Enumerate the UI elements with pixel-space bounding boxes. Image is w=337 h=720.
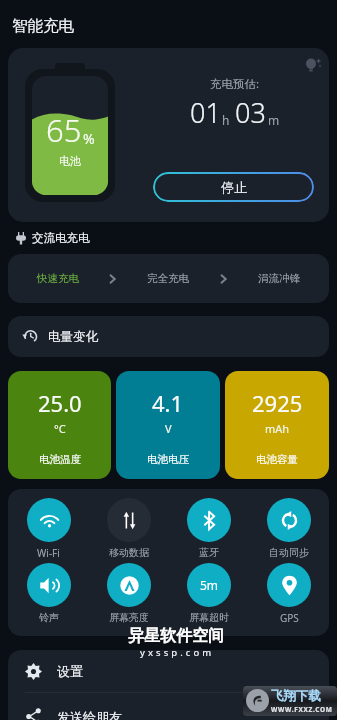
- staticText: 智能充电: [12, 16, 74, 36]
- staticText: 01: [190, 94, 221, 131]
- staticText: 设置: [57, 663, 83, 679]
- staticText: 移动数据: [109, 546, 149, 559]
- staticText: GPS: [280, 611, 299, 625]
- button[interactable]: 蓝牙: [169, 498, 249, 559]
- staticText: 03: [235, 94, 266, 131]
- staticText: 电池电压: [147, 453, 189, 466]
- staticText: y x s s p . c o m: [140, 646, 212, 659]
- staticText: %: [83, 129, 95, 148]
- button[interactable]: 铃声: [8, 563, 89, 624]
- button[interactable]: Wi-Fi: [8, 498, 89, 560]
- button[interactable]: 涓流冲锋: [229, 254, 329, 303]
- staticText: mAh: [265, 421, 290, 436]
- staticText: 铃声: [39, 611, 59, 624]
- button[interactable]: 4.1: [116, 371, 220, 479]
- staticText: V: [165, 421, 172, 436]
- staticText: 快速充电: [37, 272, 79, 285]
- staticText: 发送给朋友: [57, 709, 122, 720]
- button[interactable]: 完全充电: [118, 254, 218, 303]
- staticText: 65: [46, 109, 82, 151]
- button[interactable]: 停止: [153, 172, 314, 202]
- staticText: 异星软件空间: [128, 626, 224, 646]
- staticText: 电量变化: [48, 329, 98, 345]
- staticText: 4.1: [152, 388, 184, 418]
- staticText: 电池温度: [39, 453, 81, 466]
- button[interactable]: GPS: [249, 563, 329, 625]
- staticText: 充电预估:: [210, 76, 260, 92]
- button[interactable]: 发送给朋友: [8, 693, 329, 720]
- button[interactable]: 5m: [169, 563, 249, 624]
- button[interactable]: 自动同步: [249, 498, 329, 559]
- staticText: WWW.FXXZ.COM: [271, 705, 333, 714]
- button[interactable]: 25.0: [8, 371, 111, 479]
- staticText: 蓝牙: [199, 546, 219, 559]
- staticText: 2925: [252, 388, 303, 418]
- staticText: 飞翔下载: [271, 688, 321, 704]
- staticText: 屏幕亮度: [109, 611, 149, 624]
- button[interactable]: 2925: [225, 371, 329, 479]
- staticText: m: [268, 112, 280, 128]
- button[interactable]: 移动数据: [89, 498, 169, 559]
- button[interactable]: 设置: [8, 650, 329, 692]
- staticText: 电池: [59, 154, 81, 168]
- button[interactable]: Tips: [300, 54, 326, 80]
- staticText: 涓流冲锋: [258, 272, 300, 285]
- button[interactable]: 电量变化: [8, 316, 329, 357]
- button[interactable]: 快速充电: [8, 254, 107, 303]
- staticText: 电池容量: [256, 453, 298, 466]
- staticText: 5m: [200, 577, 219, 593]
- staticText: °C: [54, 421, 66, 436]
- staticText: 停止: [221, 179, 247, 195]
- staticText: h: [222, 112, 230, 128]
- staticText: 完全充电: [147, 272, 189, 285]
- button[interactable]: 屏幕亮度: [89, 563, 169, 624]
- staticText: 25.0: [38, 388, 82, 418]
- staticText: 自动同步: [269, 546, 309, 559]
- staticText: 交流电充电: [32, 231, 90, 245]
- staticText: 屏幕超时: [189, 611, 229, 624]
- staticText: Wi-Fi: [37, 546, 60, 560]
